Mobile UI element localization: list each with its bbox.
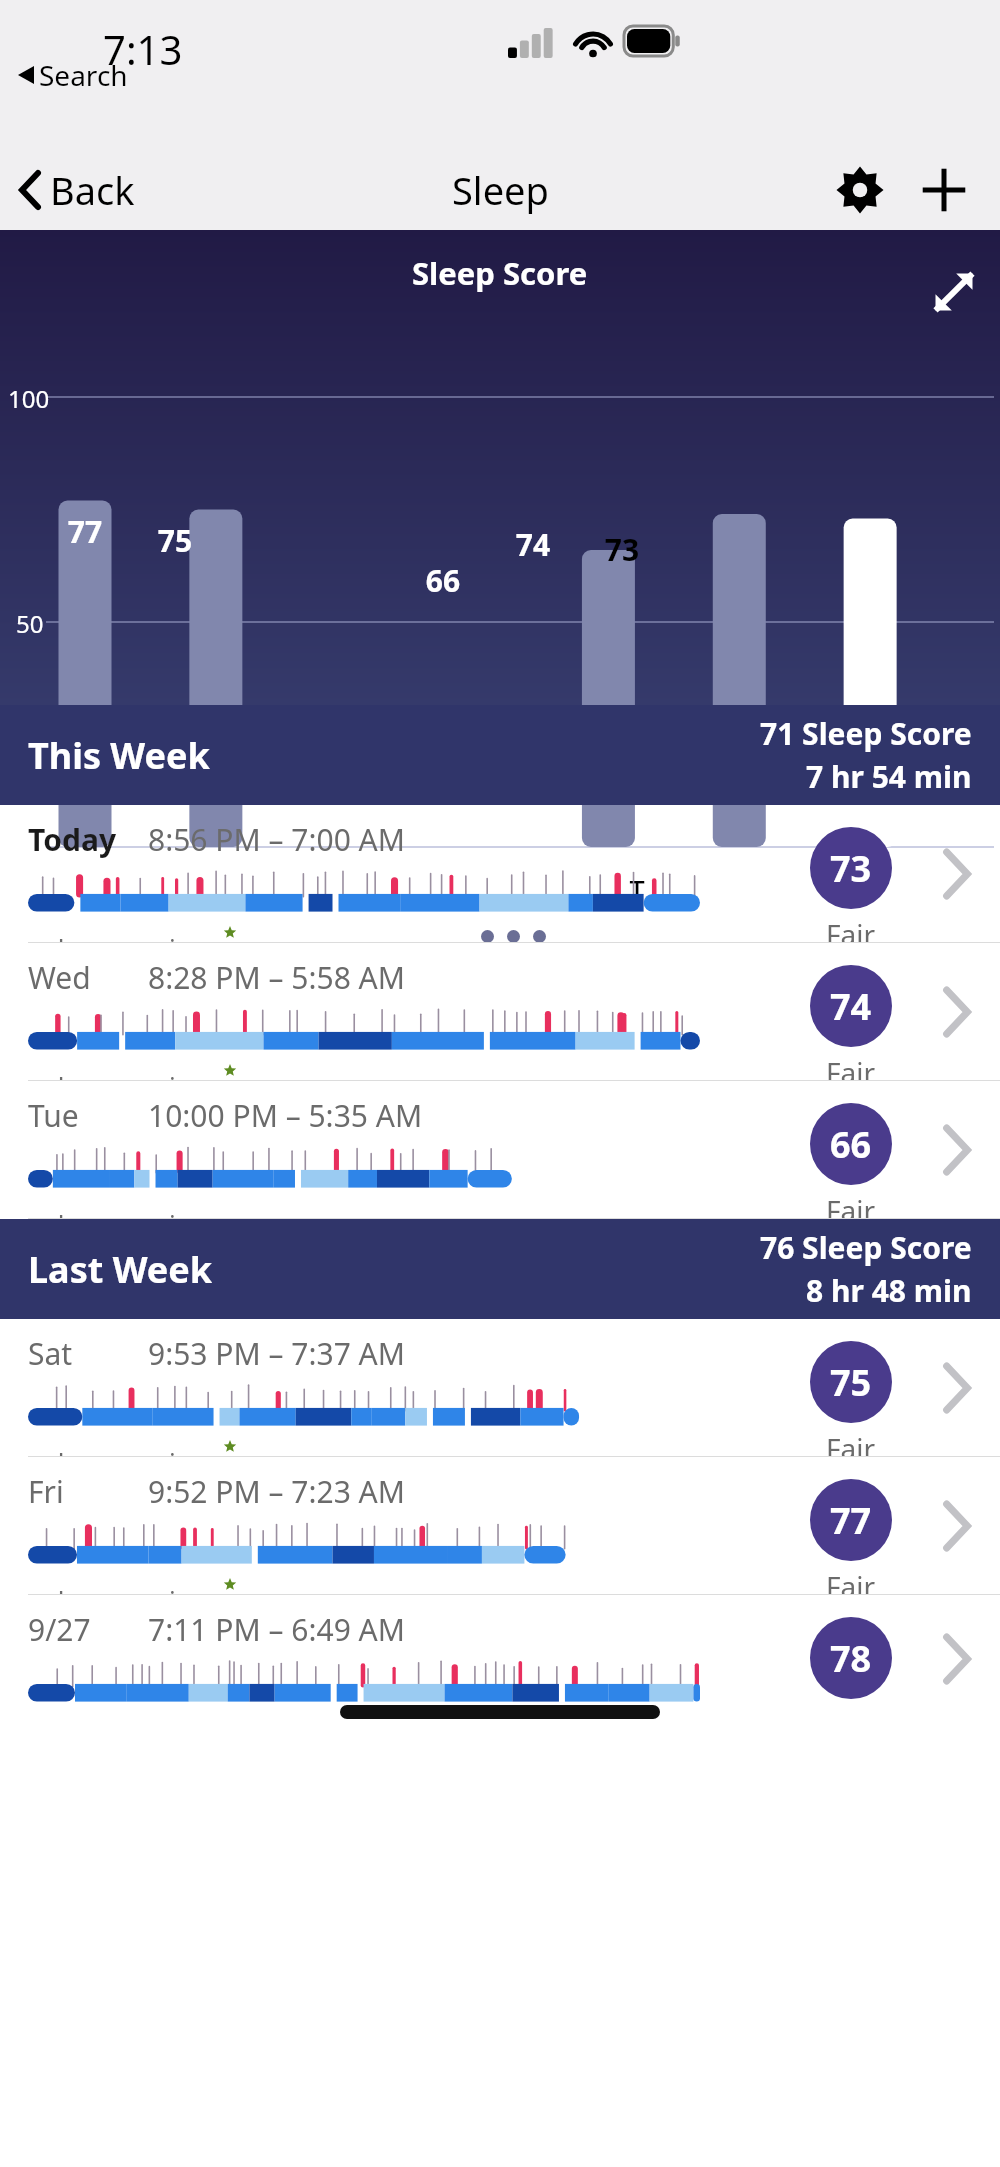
staticText: 10 [92, 1582, 138, 1595]
staticText: S [149, 870, 201, 907]
staticText: M [328, 870, 380, 907]
staticText: Tue [28, 1095, 148, 1136]
staticText: Today [28, 819, 148, 860]
button[interactable]: Tue [0, 1081, 1000, 1219]
staticText: 8 hr 48 min [806, 1270, 972, 1311]
staticText: Last Week [28, 1245, 760, 1294]
staticText: W [507, 870, 559, 907]
staticText: 74 [830, 982, 872, 1031]
staticText: 73 [596, 529, 648, 570]
staticText: hr [51, 1582, 92, 1595]
staticText: hr [51, 1444, 92, 1457]
staticText: Fair [826, 1567, 876, 1595]
staticText: 8:28 PM – 5:58 AM [148, 957, 405, 998]
button[interactable]: Expand chart [922, 260, 986, 324]
staticText: 9/27 [28, 1609, 148, 1650]
staticText: 8:56 PM – 7:00 AM [148, 819, 405, 860]
staticText: 47 [92, 1444, 138, 1457]
staticText: 66 [417, 560, 469, 601]
staticText: 8 [28, 1068, 51, 1081]
staticText: 77 [830, 1496, 872, 1545]
staticText: 39 [92, 1206, 138, 1219]
staticText: Fri [28, 1471, 148, 1512]
button[interactable]: Back [14, 158, 141, 222]
staticText: min [138, 1068, 192, 1081]
staticText: min [138, 1582, 192, 1595]
button[interactable]: Fri [0, 1457, 1000, 1595]
staticText: hr [51, 930, 92, 943]
button[interactable]: Wed [0, 943, 1000, 1081]
staticText: 75 [830, 1358, 872, 1407]
button[interactable]: Sat [0, 1319, 1000, 1457]
staticText: Fair [826, 1429, 876, 1457]
staticText: hr [51, 1206, 92, 1219]
staticText: Fair [826, 915, 876, 943]
staticText: Fair [826, 1191, 876, 1219]
staticText: Fair [826, 1053, 876, 1081]
staticText: 74 [507, 524, 559, 565]
staticText: Back [50, 164, 135, 216]
staticText: S [238, 870, 290, 907]
button[interactable]: Last Week [0, 1219, 1000, 1319]
staticText: 7:11 PM – 6:49 AM [148, 1609, 405, 1650]
staticText: 66 [830, 1120, 872, 1169]
staticText: Wed [28, 957, 148, 998]
staticText: 8 [28, 930, 51, 943]
button[interactable]: This Week [0, 705, 1000, 805]
staticText: 75 [149, 520, 201, 561]
staticText: hr [51, 1068, 92, 1081]
staticText: T [611, 872, 663, 909]
button[interactable]: 9/27 [0, 1595, 1000, 1723]
staticText: 40 [92, 930, 138, 943]
button[interactable]: Settings [832, 162, 888, 218]
staticText: Sleep [452, 164, 549, 216]
staticText: 9:53 PM – 7:37 AM [148, 1333, 405, 1374]
staticText: 9:52 PM – 7:23 AM [148, 1471, 405, 1512]
staticText: 0 [24, 832, 38, 865]
staticText: 8 [28, 1444, 51, 1457]
staticText: F [59, 870, 111, 907]
staticText: min [138, 1444, 192, 1457]
staticText: min [138, 930, 192, 943]
staticText: 10:00 PM – 5:35 AM [148, 1095, 423, 1136]
staticText: 100 [8, 382, 50, 415]
button[interactable]: Today [0, 805, 1000, 943]
staticText: 73 [830, 844, 872, 893]
staticText: Sat [28, 1333, 148, 1374]
staticText: This Week [28, 731, 760, 780]
staticText: 50 [16, 607, 44, 640]
staticText: 8 [28, 1582, 51, 1595]
staticText: 71 Sleep Score [760, 713, 972, 754]
staticText: 76 Sleep Score [760, 1227, 972, 1268]
staticText: T [596, 870, 648, 907]
staticText: 78 [830, 1634, 872, 1683]
staticText: 7:13 [103, 22, 183, 76]
staticText: Sleep Score [412, 252, 588, 294]
staticText: T [417, 870, 469, 907]
staticText: 22 [92, 1068, 138, 1081]
staticText: 6 [28, 1206, 51, 1219]
button[interactable]: Add [916, 162, 972, 218]
staticText: 7 hr 54 min [806, 756, 972, 797]
staticText: Search [39, 56, 128, 94]
staticText: min [138, 1206, 192, 1219]
staticText: 77 [59, 511, 111, 552]
